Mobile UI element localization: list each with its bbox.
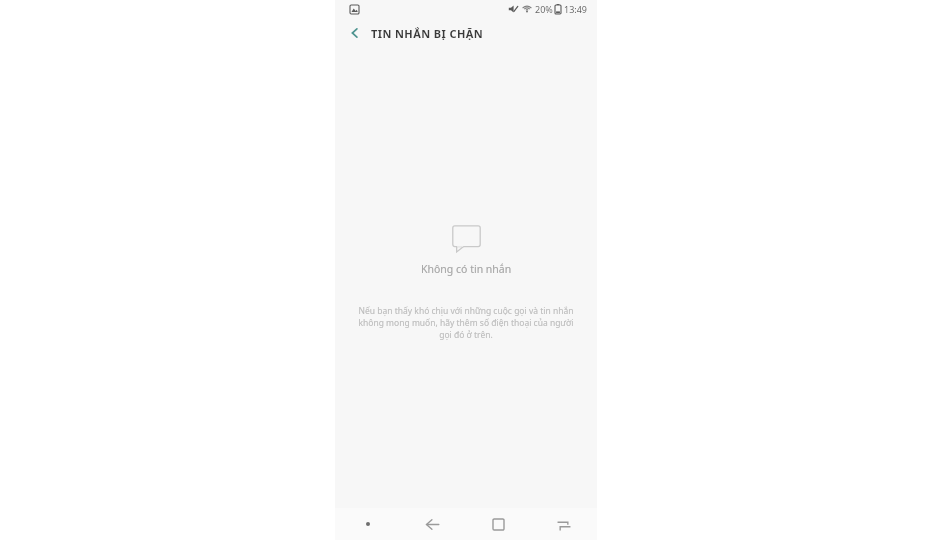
staticText: Nếu bạn thấy khó chịu với những cuộc gọi…: [358, 305, 574, 341]
staticText: 20%: [535, 3, 553, 15]
staticText: TIN NHẮN BỊ CHẶN: [371, 26, 484, 41]
button[interactable]: Home: [465, 508, 531, 540]
staticText: Không có tin nhắn: [421, 262, 512, 276]
button[interactable]: Back: [345, 23, 365, 43]
button[interactable]: Recents: [531, 508, 597, 540]
button[interactable]: Menu: [335, 508, 400, 540]
button[interactable]: Back: [400, 508, 465, 540]
staticText: 13:49: [564, 3, 588, 15]
